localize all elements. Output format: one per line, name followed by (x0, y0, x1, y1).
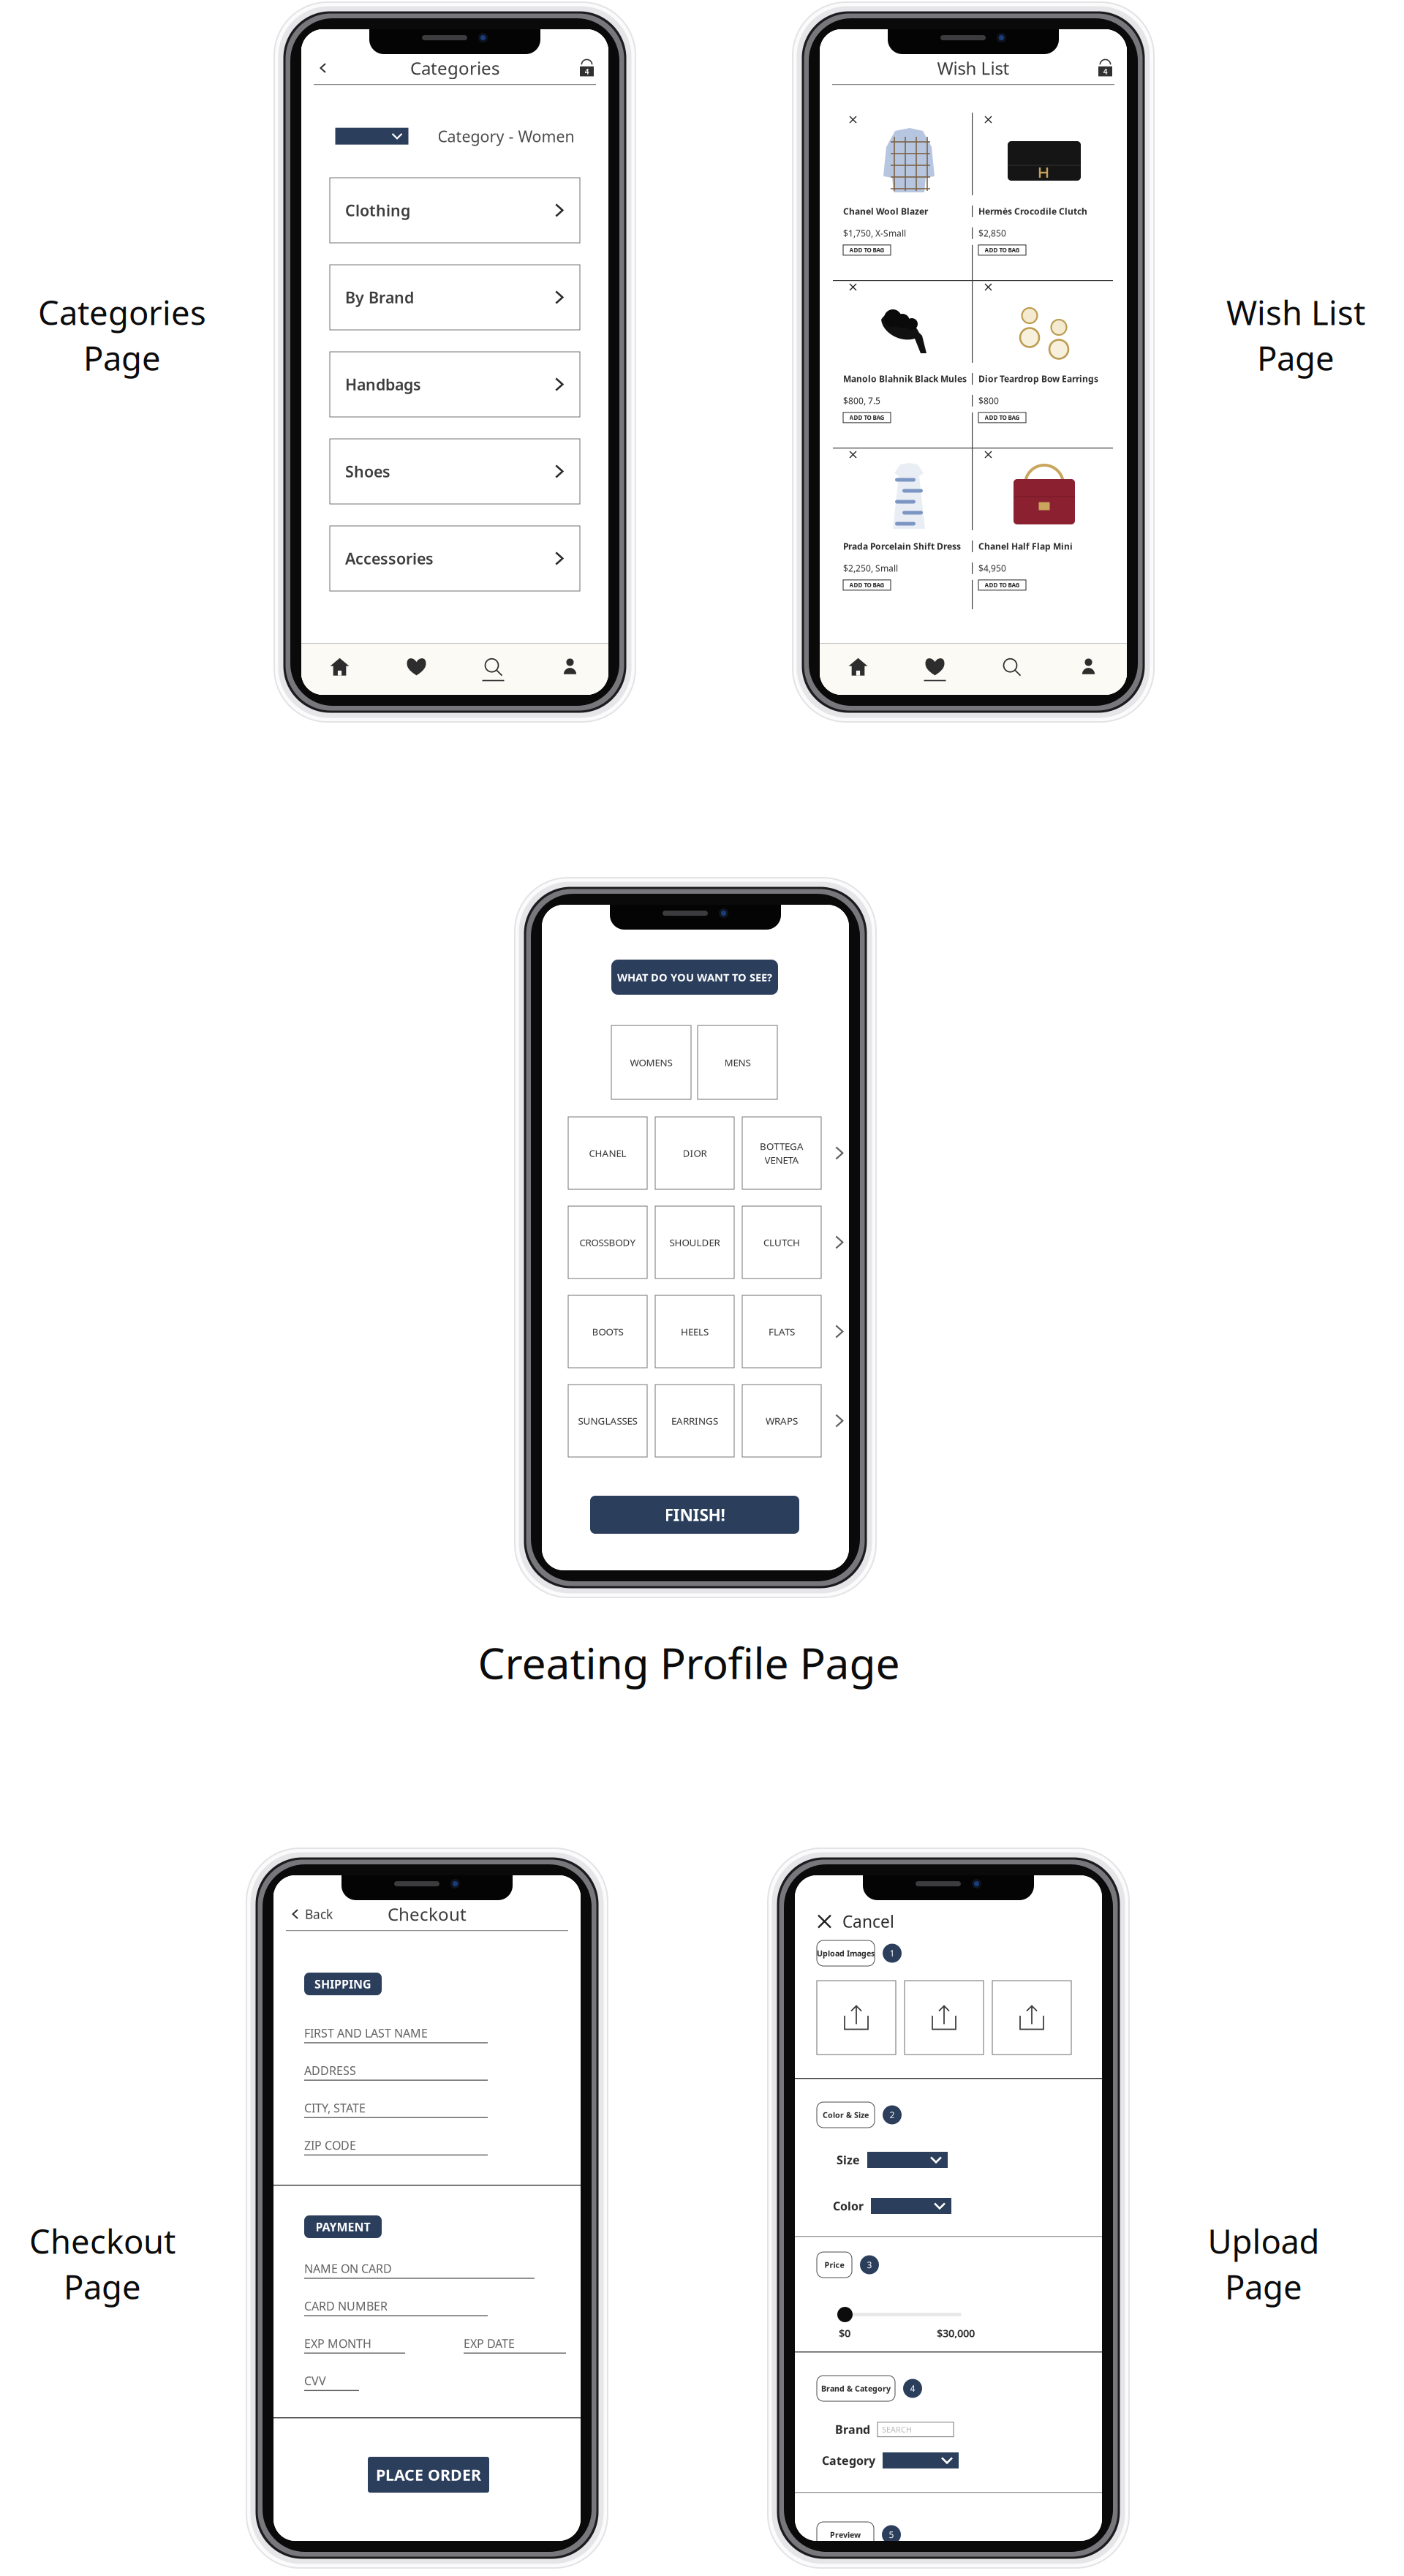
staticText: Chanel Wool Blazer (843, 206, 928, 217)
button[interactable]: Profile (1050, 644, 1127, 695)
button[interactable]: Handbags (330, 352, 580, 417)
staticText: FIRST AND LAST NAME (304, 2025, 428, 2041)
button[interactable]: Accessories (330, 526, 580, 591)
staticText: WOMENS (630, 1056, 672, 1069)
staticText: ADD TO BAG (985, 581, 1020, 589)
staticText: VENETA (765, 1153, 799, 1166)
staticText: $2,850 (978, 227, 1006, 239)
staticText: Accessories (345, 548, 434, 569)
staticText: SEARCH (882, 2424, 912, 2435)
staticText: $1,750, X-Small (843, 227, 906, 239)
button[interactable]: Bag (580, 60, 594, 76)
staticText: MENS (724, 1056, 751, 1069)
staticText: SHIPPING (314, 1976, 371, 1992)
button[interactable]: WOMENS (611, 1025, 691, 1099)
button[interactable]: CLUTCH (742, 1206, 821, 1278)
staticText: HEELS (681, 1325, 709, 1338)
button[interactable]: WRAPS (742, 1385, 821, 1457)
button[interactable]: ADD TO BAG (843, 580, 891, 590)
button[interactable]: Cancel (818, 1910, 894, 1932)
button[interactable]: Shoes (330, 439, 580, 504)
staticText: 4 (1103, 66, 1107, 77)
staticText: FINISH! (664, 1504, 725, 1526)
button[interactable]: Select (871, 2198, 951, 2214)
button[interactable]: Upload image (817, 1981, 896, 2055)
staticText: $800, 7.5 (843, 395, 880, 407)
staticText: 3 (867, 2259, 872, 2271)
button[interactable]: Select (867, 2152, 948, 2168)
button[interactable]: Remove Chanel Wool Blazer (846, 113, 860, 127)
button[interactable]: Clothing (330, 178, 580, 243)
button[interactable]: Remove Manolo Blahnik Black Mules (846, 280, 860, 294)
button[interactable]: More (829, 1146, 849, 1160)
staticText: ADD TO BAG (849, 246, 884, 254)
button[interactable]: ADD TO BAG (843, 245, 891, 255)
button[interactable]: Select (883, 2452, 959, 2468)
staticText: 4 (585, 66, 589, 77)
staticText: $30,000 (937, 2326, 975, 2340)
button[interactable]: BOOTS (568, 1295, 647, 1368)
button[interactable]: WHAT DO YOU WANT TO SEE? (611, 960, 778, 995)
button[interactable]: DIOR (655, 1117, 734, 1189)
staticText: ADD TO BAG (985, 246, 1020, 254)
button[interactable]: ADD TO BAG (978, 580, 1026, 590)
button[interactable]: Upload image (905, 1981, 984, 2055)
button[interactable]: More (829, 1235, 849, 1249)
button[interactable]: Back (316, 56, 330, 80)
staticText: EXP MONTH (304, 2336, 371, 2351)
button[interactable]: CHANEL (568, 1117, 647, 1189)
button[interactable]: Home (301, 644, 378, 695)
button[interactable]: More (829, 1414, 849, 1428)
button[interactable]: ADD TO BAG (843, 412, 891, 423)
button[interactable]: Search (973, 644, 1050, 695)
button[interactable]: Color & Size (817, 2102, 875, 2128)
button[interactable]: Remove Dior Teardrop Bow Earrings (981, 280, 995, 294)
staticText: 1 (890, 1947, 895, 1959)
button[interactable]: FINISH! (590, 1496, 799, 1534)
staticText: Page (83, 336, 161, 380)
button[interactable]: Bag (1098, 60, 1112, 76)
button[interactable]: Upload image (992, 1981, 1071, 2055)
staticText: CHANEL (589, 1147, 626, 1159)
staticText: Prada Porcelain Shift Dress (843, 541, 961, 552)
staticText: CVV (304, 2373, 326, 2388)
button[interactable]: Wish List (897, 644, 973, 695)
button[interactable]: MENS (698, 1025, 777, 1099)
button[interactable]: SUNGLASSES (568, 1385, 647, 1457)
button[interactable]: SHOULDER (655, 1206, 734, 1278)
button[interactable]: CROSSBODY (568, 1206, 647, 1278)
staticText: ADDRESS (304, 2063, 356, 2078)
staticText: BOOTS (592, 1325, 623, 1338)
button[interactable]: Home (820, 644, 897, 695)
staticText: 5 (889, 2529, 894, 2540)
button[interactable]: Preview (817, 2522, 874, 2547)
button[interactable]: Brand & Category (817, 2376, 895, 2401)
button[interactable]: PLACE ORDER (368, 2457, 489, 2493)
button[interactable]: Remove Prada Porcelain Shift Dress (846, 448, 860, 462)
button[interactable]: Profile (532, 644, 608, 695)
button[interactable]: FLATS (742, 1295, 821, 1368)
button[interactable]: Choose category (335, 128, 408, 145)
button[interactable]: Remove Chanel Half Flap Mini (981, 448, 995, 462)
button[interactable]: Search (455, 644, 532, 695)
staticText: Handbags (345, 374, 421, 395)
staticText: Category - Women (438, 126, 574, 146)
button[interactable]: Upload Images (817, 1940, 875, 1966)
button[interactable]: By Brand (330, 265, 580, 330)
button[interactable]: More (829, 1325, 849, 1338)
staticText: Size (837, 2152, 860, 2168)
button[interactable]: ADD TO BAG (978, 245, 1026, 255)
staticText: Back (305, 1906, 333, 1922)
button[interactable]: Remove Hermès Crocodile Clutch (981, 113, 995, 127)
staticText: 4 (910, 2383, 915, 2394)
button[interactable]: ADD TO BAG (978, 412, 1026, 423)
button[interactable]: Wish List (378, 644, 455, 695)
staticText: $4,950 (978, 562, 1006, 574)
button[interactable]: EARRINGS (655, 1385, 734, 1457)
staticText: ADD TO BAG (849, 581, 884, 589)
staticText: Clothing (345, 200, 410, 221)
button[interactable]: Price (817, 2252, 852, 2278)
button[interactable]: HEELS (655, 1295, 734, 1368)
button[interactable]: Back (288, 1902, 336, 1927)
button[interactable]: BOTTEGA (742, 1117, 821, 1189)
